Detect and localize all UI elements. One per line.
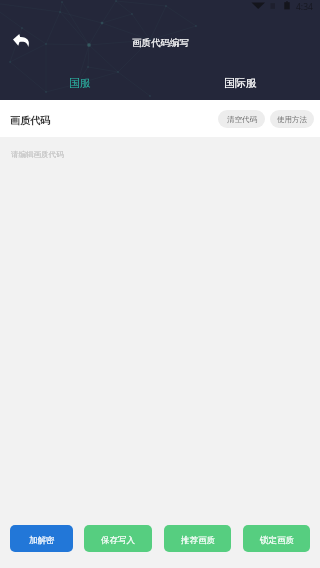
staticText: 清空代码: [227, 115, 257, 124]
button[interactable]: 推荐画质: [164, 525, 231, 552]
button[interactable]: 锁定画质: [243, 525, 310, 552]
staticText: 保存写入: [101, 535, 135, 546]
button[interactable]: Back: [5, 24, 37, 56]
button[interactable]: 使用方法: [270, 110, 314, 128]
button[interactable]: 加解密: [10, 525, 73, 552]
staticText: 加解密: [29, 535, 55, 546]
staticText: 锁定画质: [260, 535, 294, 546]
staticText: 画质代码: [10, 114, 50, 127]
button[interactable]: 清空代码: [218, 110, 265, 128]
staticText: 国服: [69, 76, 91, 90]
staticText: 请编辑画质代码: [11, 150, 64, 159]
staticText: 画质代码编写: [132, 37, 189, 49]
staticText: 推荐画质: [181, 535, 215, 546]
button[interactable]: 保存写入: [84, 525, 152, 552]
staticText: 使用方法: [277, 115, 307, 124]
button[interactable]: 国际服: [160, 72, 320, 94]
button[interactable]: 国服: [0, 72, 160, 94]
staticText: 4:34: [296, 1, 313, 13]
staticText: 国际服: [224, 76, 257, 90]
